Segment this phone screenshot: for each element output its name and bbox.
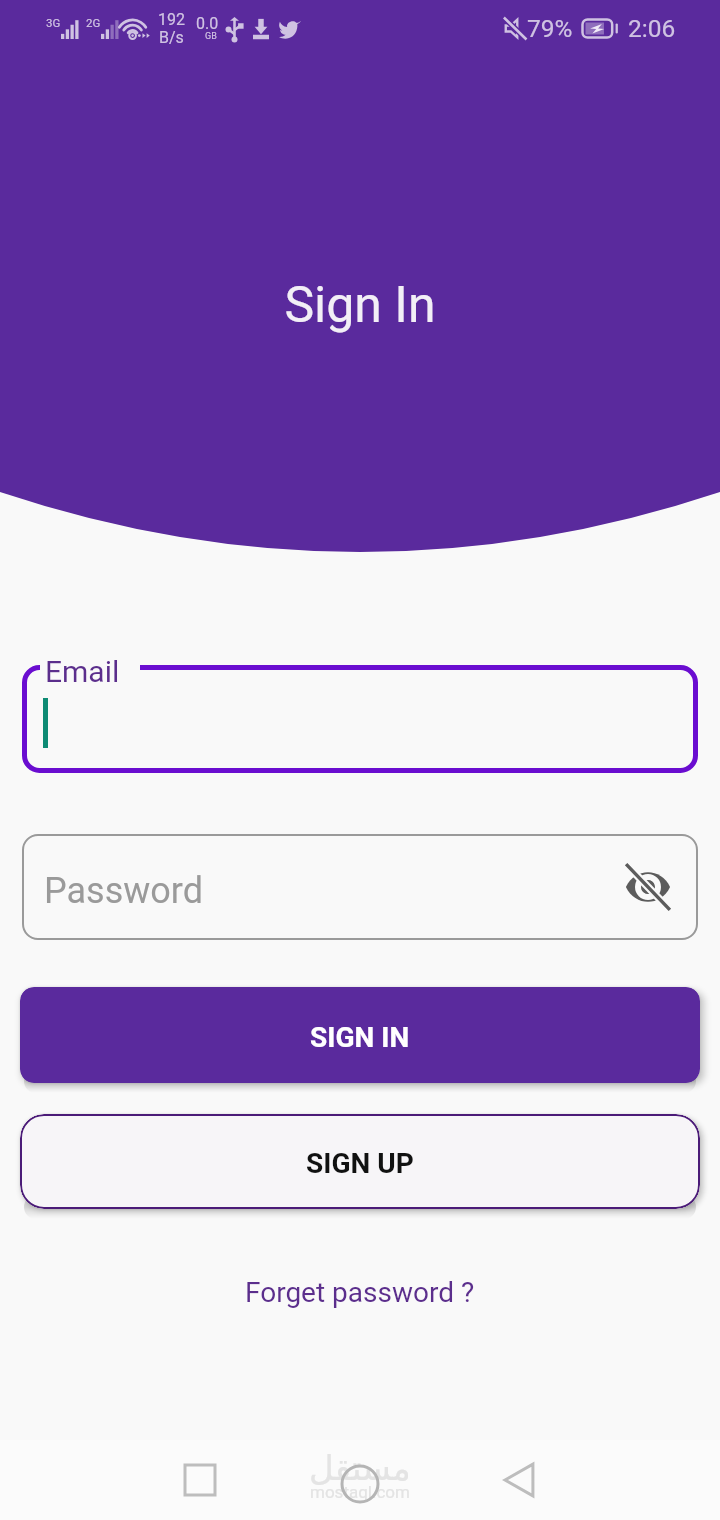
- staticText: Forget password ?: [245, 1276, 475, 1309]
- staticText: 79%: [527, 14, 573, 43]
- staticText: mostaql.com: [310, 1482, 410, 1502]
- staticText: Sign In: [0, 276, 720, 335]
- button[interactable]: SIGN UP: [20, 1114, 700, 1209]
- staticText: 192: [158, 10, 185, 29]
- button[interactable]: Show password: [621, 860, 675, 914]
- staticText: SIGN IN: [310, 1021, 410, 1054]
- staticText: 2:06: [628, 14, 676, 43]
- staticText: B/s: [159, 28, 184, 47]
- staticText: 0.0: [196, 14, 219, 33]
- staticText: GB: [205, 31, 217, 42]
- button[interactable]: SIGN IN: [20, 987, 700, 1083]
- button[interactable]: Forget password ?: [0, 1262, 720, 1318]
- staticText: Email: [45, 654, 120, 689]
- staticText: مستقل: [309, 1448, 411, 1488]
- staticText: Password: [44, 870, 204, 912]
- staticText: 2G: [86, 16, 101, 29]
- button[interactable]: Password: [22, 834, 698, 940]
- button[interactable]: Home: [320, 1444, 400, 1520]
- button[interactable]: Recents: [160, 1440, 240, 1520]
- button[interactable]: Back: [480, 1440, 560, 1520]
- staticText: SIGN UP: [306, 1147, 414, 1180]
- staticText: 3G: [46, 16, 61, 29]
